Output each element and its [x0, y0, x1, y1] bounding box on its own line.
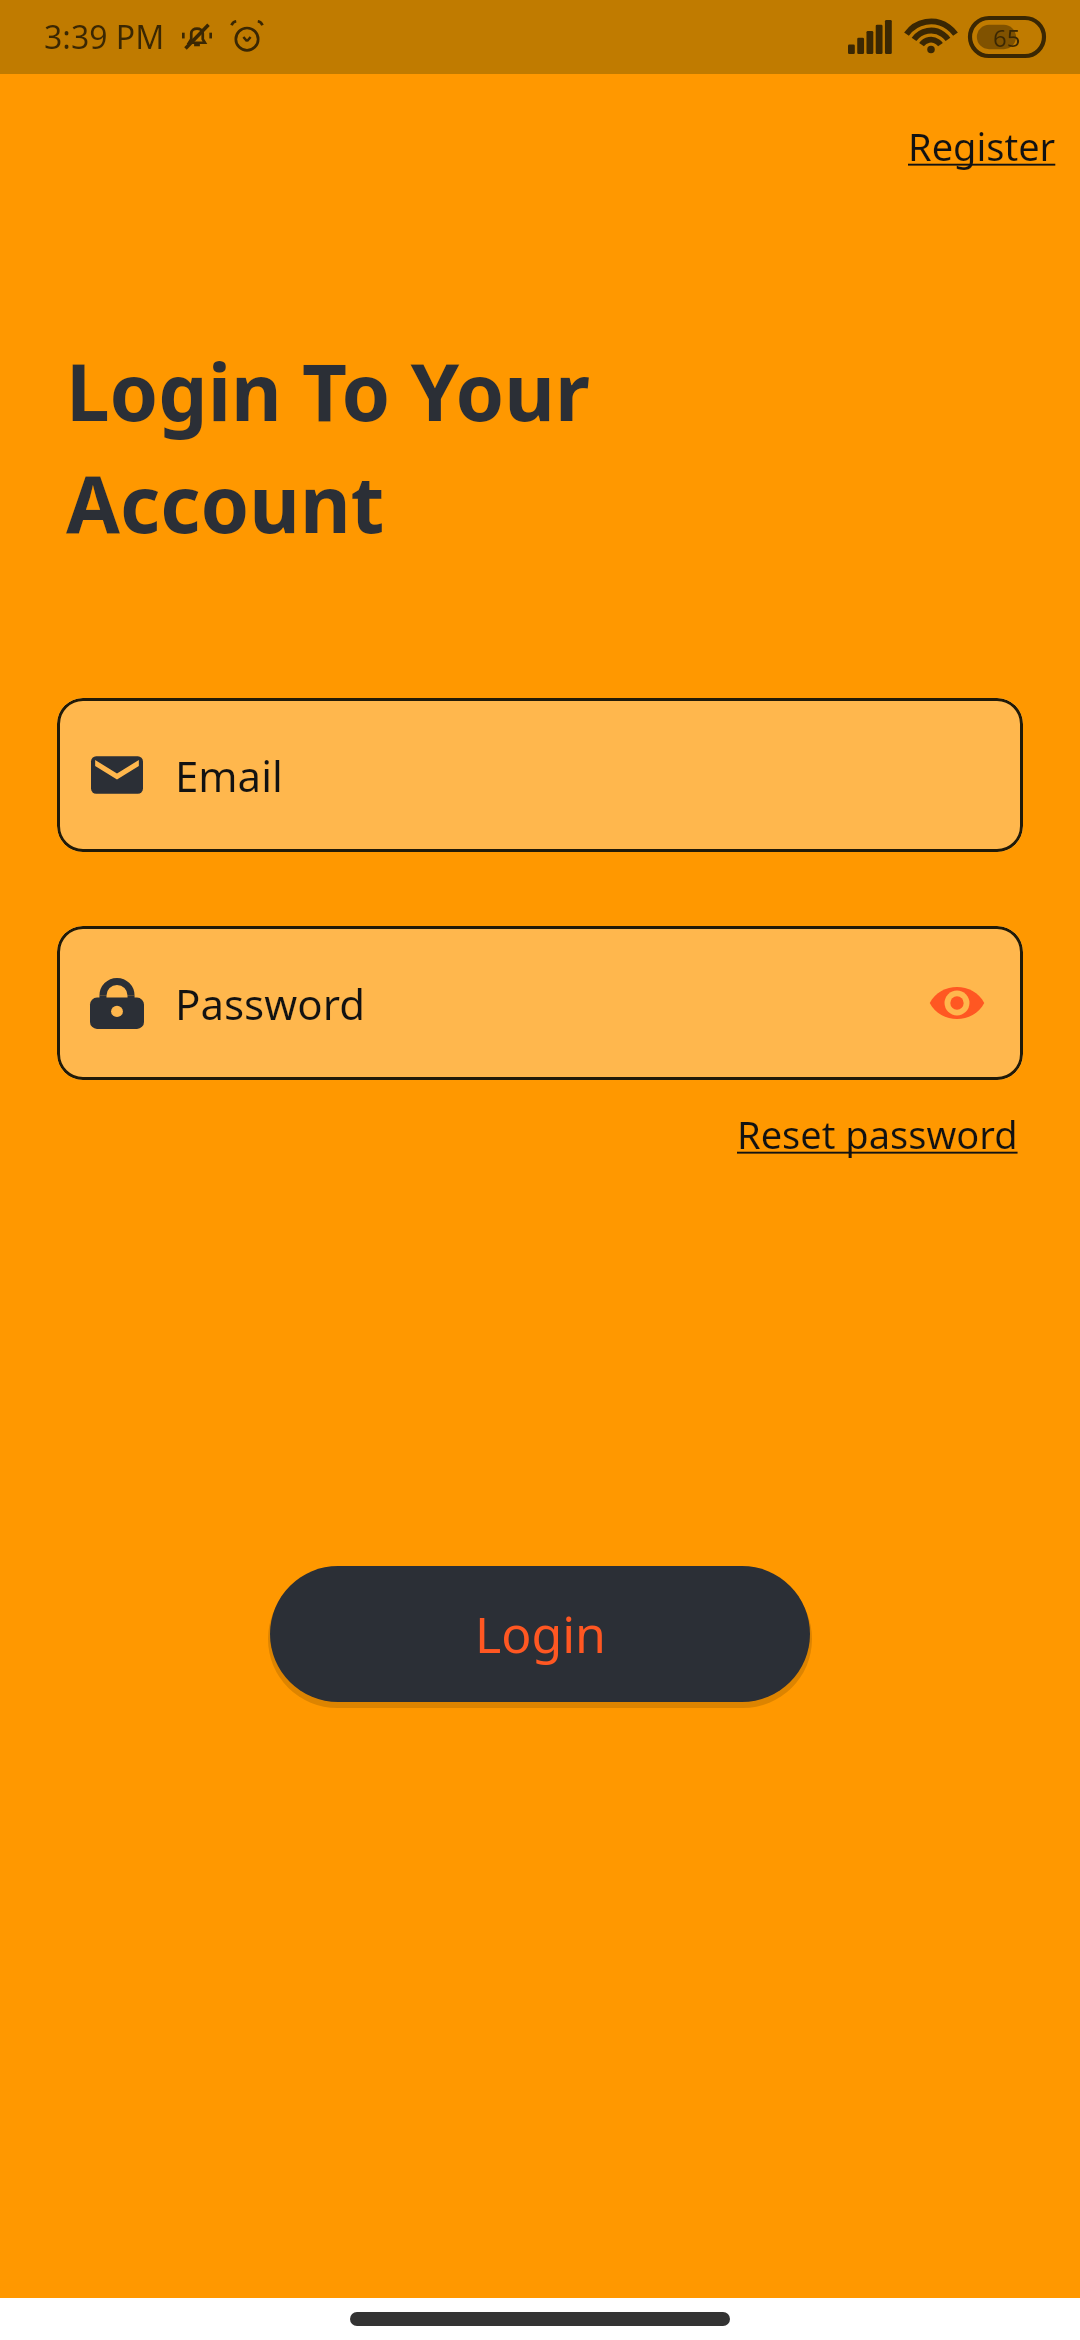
staticText: Email — [175, 747, 283, 804]
button[interactable]: Password — [57, 926, 1023, 1080]
button[interactable]: Email — [57, 698, 1023, 852]
staticText: Login — [475, 1600, 606, 1668]
staticText: 3:39 PM — [44, 15, 165, 59]
button[interactable]: Reset password — [733, 1104, 1032, 1164]
button[interactable]: Show password — [925, 971, 989, 1035]
button[interactable]: Login — [270, 1566, 810, 1702]
staticText: Login To Your Account — [66, 338, 590, 556]
button[interactable]: Register — [904, 116, 1060, 176]
staticText: 65 — [993, 21, 1021, 54]
staticText: Reset password — [737, 1108, 1028, 1160]
staticText: Register — [908, 120, 1056, 172]
staticText: Password — [175, 975, 365, 1032]
